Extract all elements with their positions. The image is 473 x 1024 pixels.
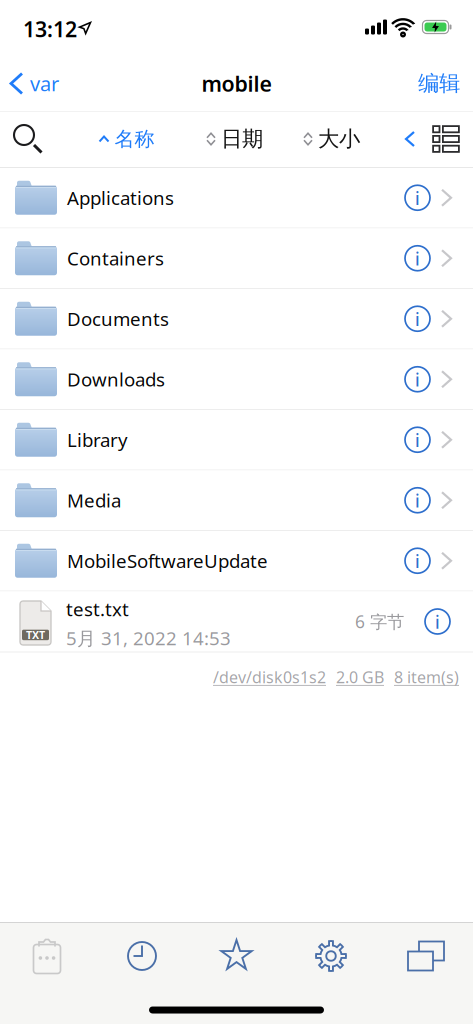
- staticText: 编辑: [418, 70, 460, 97]
- staticText: Documents: [67, 306, 169, 331]
- staticText: TXT: [26, 628, 45, 642]
- button[interactable]: MobileSoftwareUpdate: [0, 531, 473, 590]
- button[interactable]: Info: [404, 426, 431, 453]
- button[interactable]: Info: [404, 184, 431, 211]
- staticText: Library: [67, 427, 128, 452]
- button[interactable]: Info: [424, 608, 451, 635]
- button[interactable]: Collapse sort options: [406, 132, 414, 146]
- staticText: test.txt: [66, 597, 129, 621]
- staticText: 日期: [221, 126, 263, 152]
- staticText: 13:12: [23, 15, 77, 43]
- button[interactable]: Applications: [0, 168, 473, 227]
- staticText: i: [415, 368, 420, 391]
- staticText: mobile: [201, 69, 271, 98]
- button[interactable]: Info: [404, 547, 431, 574]
- button[interactable]: Containers: [0, 228, 473, 288]
- button[interactable]: Library: [0, 410, 473, 469]
- button[interactable]: Info: [404, 366, 431, 393]
- button[interactable]: TXT: [0, 591, 473, 651]
- button[interactable]: Downloads: [0, 349, 473, 409]
- button[interactable]: Info: [404, 487, 431, 514]
- staticText: 6 字节: [355, 610, 404, 633]
- staticText: i: [415, 187, 420, 210]
- button[interactable]: Back: [0, 70, 59, 97]
- staticText: var: [30, 70, 59, 97]
- staticText: MobileSoftwareUpdate: [67, 548, 268, 573]
- staticText: i: [415, 308, 420, 331]
- button[interactable]: Favorites: [220, 940, 253, 972]
- button[interactable]: 名称: [99, 127, 154, 151]
- button[interactable]: Clipboard: [30, 937, 64, 975]
- button[interactable]: Media: [0, 470, 473, 530]
- staticText: 2.0 GB: [336, 666, 384, 688]
- button[interactable]: Recent: [125, 939, 159, 973]
- staticText: /dev/disk0s1s2: [213, 666, 326, 688]
- button[interactable]: Settings: [314, 939, 348, 973]
- button[interactable]: Search: [13, 124, 43, 154]
- staticText: 5月 31, 2022 14:53: [66, 625, 231, 650]
- staticText: Downloads: [67, 367, 165, 392]
- staticText: Containers: [67, 246, 164, 271]
- staticText: 大小: [318, 126, 360, 152]
- button[interactable]: Info: [404, 305, 431, 332]
- staticText: i: [415, 247, 420, 270]
- staticText: i: [415, 429, 420, 452]
- staticText: i: [415, 489, 420, 512]
- staticText: 名称: [114, 127, 154, 151]
- staticText: i: [435, 610, 440, 633]
- staticText: Applications: [67, 185, 174, 210]
- button[interactable]: 编辑: [418, 70, 473, 97]
- staticText: i: [415, 550, 420, 573]
- staticText: 8 item(s): [394, 666, 459, 688]
- button[interactable]: 日期: [207, 126, 263, 152]
- button[interactable]: Documents: [0, 289, 473, 348]
- button[interactable]: View options: [433, 126, 459, 152]
- staticText: Media: [67, 488, 121, 513]
- button[interactable]: 大小: [304, 126, 360, 152]
- button[interactable]: Info: [404, 245, 431, 272]
- button[interactable]: Tabs: [407, 940, 445, 971]
